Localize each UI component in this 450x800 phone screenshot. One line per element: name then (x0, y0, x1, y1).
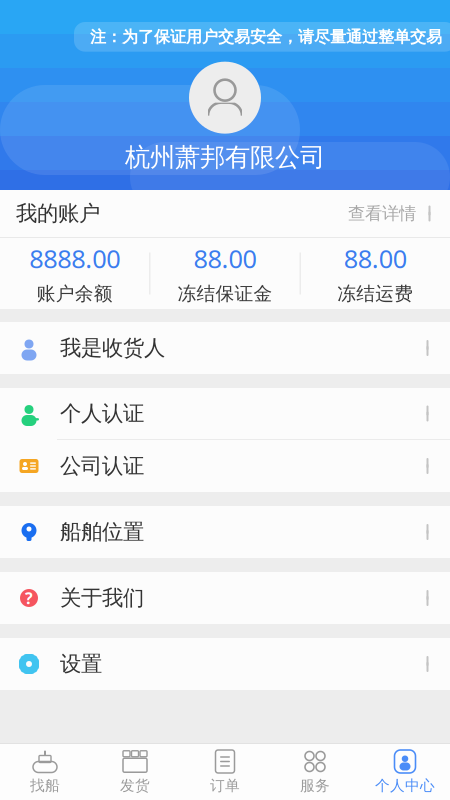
staticText: 订单 (210, 776, 240, 794)
staticText: 冻结保证金 (177, 282, 272, 305)
staticText: 冻结运费 (337, 282, 413, 305)
staticText: 关于我们 (60, 585, 144, 611)
staticText: 找船 (30, 776, 60, 794)
staticText: ? (25, 587, 33, 609)
button[interactable]: 设置 (0, 638, 450, 690)
staticText: 我是收货人 (60, 335, 165, 361)
staticText: 船舶位置 (60, 519, 144, 545)
staticText: 杭州萧邦有限公司 (125, 142, 325, 173)
staticText: 88.00 (344, 242, 407, 275)
staticText: 公司认证 (60, 453, 144, 479)
button[interactable]: ? (0, 572, 450, 624)
button[interactable]: 个人中心 (360, 744, 450, 800)
button[interactable]: 发货 (90, 744, 180, 800)
staticText: 个人认证 (60, 400, 144, 427)
button[interactable]: 我是收货人 (0, 322, 450, 374)
staticText: 查看详情 (348, 203, 416, 224)
button[interactable]: 个人认证 (0, 388, 450, 440)
staticText: 发货 (120, 776, 150, 794)
button[interactable]: 我的账户 (0, 190, 450, 237)
button[interactable]: 服务 (270, 744, 360, 800)
staticText: 账户余额 (37, 282, 113, 305)
staticText: 8888.00 (29, 242, 120, 275)
button[interactable]: 公司认证 (0, 440, 450, 492)
staticText: 设置 (60, 651, 102, 677)
staticText: 个人中心 (375, 776, 435, 794)
staticText: 服务 (300, 776, 330, 794)
button[interactable]: 找船 (0, 744, 90, 800)
staticText: 88.00 (193, 242, 256, 275)
button[interactable]: 船舶位置 (0, 506, 450, 558)
button[interactable]: 订单 (180, 744, 270, 800)
staticText: 我的账户 (16, 200, 100, 227)
staticText: 注：为了保证用户交易安全，请尽量通过整单交易 (90, 27, 442, 47)
